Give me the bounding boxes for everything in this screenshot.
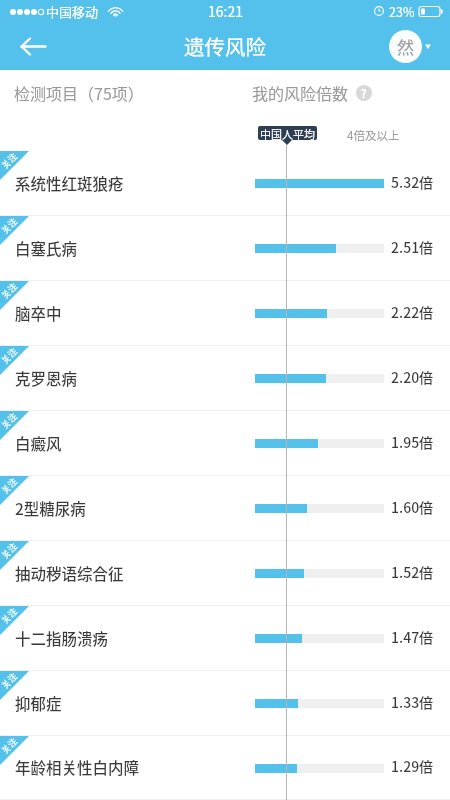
button[interactable]: 关注: [0, 216, 450, 281]
button[interactable]: 关注: [0, 151, 450, 216]
staticText: 关注: [0, 669, 21, 692]
staticText: 遗传风险: [184, 31, 266, 61]
staticText: 关注: [0, 214, 21, 237]
staticText: 脑卒中: [15, 302, 62, 324]
staticText: 关注: [0, 734, 21, 757]
staticText: 白塞氏病: [15, 237, 78, 259]
staticText: 关注: [0, 344, 21, 367]
staticText: 关注: [0, 409, 21, 432]
staticText: 2.22倍: [391, 302, 434, 322]
staticText: 1.47倍: [391, 627, 434, 647]
staticText: 抽动秽语综合征: [15, 562, 124, 584]
staticText: 23%: [389, 2, 415, 20]
staticText: 十二指肠溃疡: [15, 627, 109, 649]
staticText: 抑郁症: [15, 692, 62, 714]
staticText: 1.52倍: [391, 562, 434, 582]
staticText: 1.29倍: [391, 756, 434, 776]
button[interactable]: 关注: [0, 541, 450, 606]
staticText: 16:21: [208, 1, 243, 21]
staticText: 克罗恩病: [15, 367, 78, 389]
button[interactable]: 关注: [0, 346, 450, 411]
staticText: 我的风险倍数: [252, 81, 349, 104]
staticText: 关注: [0, 604, 21, 627]
staticText: 5.32倍: [391, 172, 434, 192]
staticText: 关注: [0, 539, 21, 562]
button[interactable]: 关注: [0, 281, 450, 346]
staticText: 1.60倍: [391, 497, 434, 517]
staticText: 2.51倍: [391, 237, 434, 257]
button[interactable]: Back: [0, 22, 65, 70]
staticText: 1.95倍: [391, 432, 434, 452]
button[interactable]: 关注: [0, 671, 450, 736]
staticText: 1.33倍: [391, 692, 434, 712]
staticText: 检测项目（75项）: [14, 81, 144, 104]
staticText: 白癜风: [15, 432, 62, 454]
staticText: 中国移动: [46, 2, 99, 21]
staticText: 关注: [0, 149, 21, 172]
button[interactable]: 关注: [0, 476, 450, 541]
button[interactable]: Account: [389, 30, 431, 63]
staticText: 年龄相关性白内障: [15, 756, 140, 778]
staticText: 4倍及以上: [347, 127, 400, 144]
staticText: 关注: [0, 474, 21, 497]
button[interactable]: 关注: [0, 606, 450, 671]
staticText: 然: [397, 34, 414, 59]
staticText: 中国人平均: [260, 126, 315, 140]
button[interactable]: 关注: [0, 736, 450, 800]
staticText: 关注: [0, 279, 21, 302]
staticText: 2型糖尿病: [15, 497, 86, 519]
button[interactable]: 关注: [0, 411, 450, 476]
staticText: 系统性红斑狼疮: [15, 172, 124, 194]
staticText: 2.20倍: [391, 367, 434, 387]
button[interactable]: Help: [356, 85, 372, 101]
staticText: ?: [361, 85, 367, 101]
